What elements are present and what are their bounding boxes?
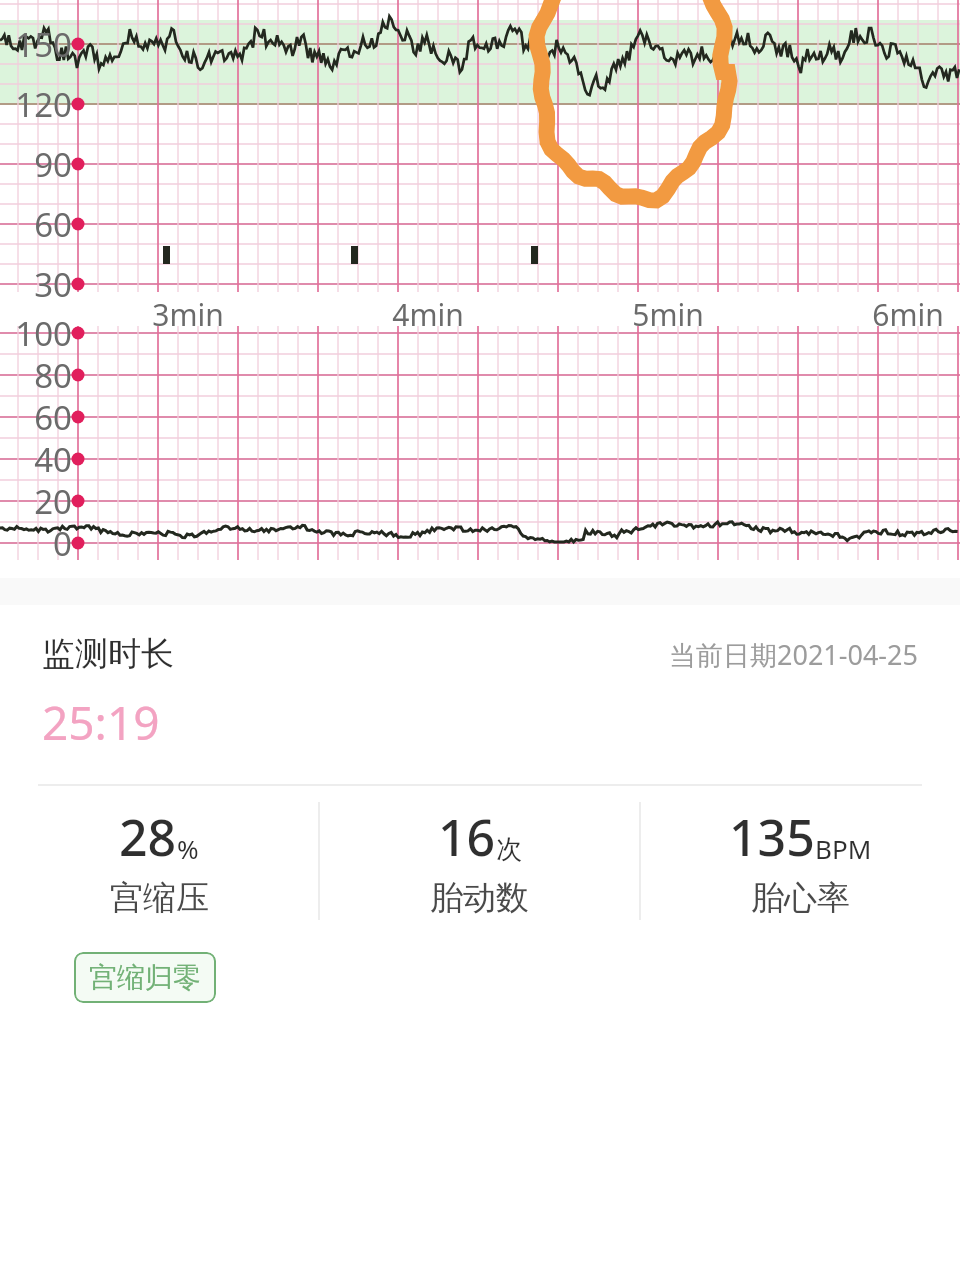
staticText: 5min xyxy=(608,294,728,335)
staticText: % xyxy=(177,831,199,866)
staticText: 150 xyxy=(0,22,72,67)
staticText: 宫缩压 xyxy=(110,877,209,919)
button[interactable]: 28 xyxy=(0,803,318,919)
staticText: 40 xyxy=(0,437,72,482)
staticText: 80 xyxy=(0,353,72,398)
staticText: 135 xyxy=(729,803,815,871)
staticText: 28 xyxy=(119,803,177,871)
staticText: 0 xyxy=(0,521,72,566)
staticText: 次 xyxy=(496,833,522,866)
staticText: 25:19 xyxy=(42,691,160,754)
staticText: BPM xyxy=(815,831,872,866)
staticText: 16 xyxy=(438,803,496,871)
staticText: 3min xyxy=(128,294,248,335)
button[interactable]: 宫缩归零 xyxy=(74,952,216,1003)
staticText: 100 xyxy=(0,311,72,356)
staticText: 4min xyxy=(368,294,488,335)
staticText: 宫缩归零 xyxy=(89,960,201,995)
staticText: 胎心率 xyxy=(751,877,850,919)
staticText: 20 xyxy=(0,479,72,524)
button[interactable]: 135 xyxy=(641,803,960,919)
staticText: 6min xyxy=(848,294,960,335)
staticText: 60 xyxy=(0,395,72,440)
button[interactable]: 16 xyxy=(320,803,639,919)
staticText: 60 xyxy=(0,202,72,247)
staticText: 90 xyxy=(0,142,72,187)
staticText: 120 xyxy=(0,82,72,127)
staticText: 30 xyxy=(0,262,72,307)
staticText: 当前日期2021-04-25 xyxy=(669,636,918,673)
staticText: 胎动数 xyxy=(430,877,529,919)
staticText: 监测时长 xyxy=(42,633,174,675)
